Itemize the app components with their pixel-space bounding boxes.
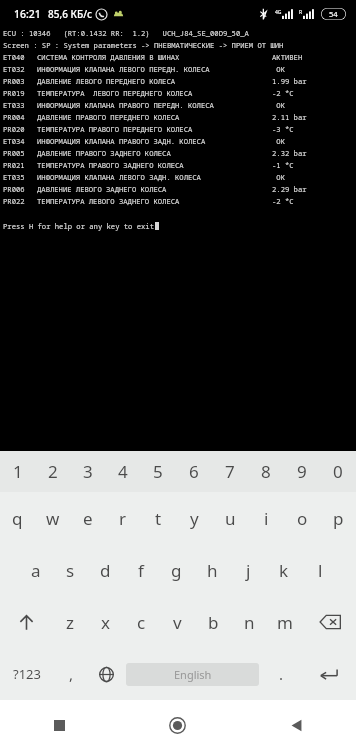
- button[interactable]: j: [230, 544, 266, 596]
- button[interactable]: v: [159, 596, 195, 648]
- button[interactable]: n: [231, 596, 267, 648]
- staticText: f: [138, 559, 144, 582]
- staticText: ,: [69, 664, 74, 684]
- button[interactable]: r: [105, 492, 140, 544]
- staticText: English: [174, 667, 212, 682]
- staticText: 1.99 bar: [272, 76, 307, 86]
- staticText: PR003: [3, 76, 25, 86]
- button[interactable]: ,: [54, 648, 89, 700]
- button[interactable]: a: [18, 544, 53, 596]
- staticText: ET033: [3, 100, 25, 110]
- staticText: ?123: [13, 665, 41, 683]
- staticText: y: [190, 507, 199, 530]
- button[interactable]: 6: [176, 451, 212, 492]
- button[interactable]: 0: [320, 451, 356, 492]
- button[interactable]: y: [176, 492, 212, 544]
- staticText: ТЕМПЕРАТУРА ПРАВОГО ПЕРЕДНЕГО КОЛЕСА: [37, 124, 193, 134]
- button[interactable]: Recent apps: [0, 700, 118, 750]
- button[interactable]: c: [123, 596, 159, 648]
- button[interactable]: 4: [105, 451, 140, 492]
- button[interactable]: m: [267, 596, 303, 648]
- staticText: OK: [272, 136, 285, 146]
- button[interactable]: l: [302, 544, 338, 596]
- staticText: ИНФОРМАЦИЯ КЛАПАНА ПРАВОГО ЗАДН. КОЛЕСА: [37, 136, 206, 146]
- button[interactable]: 9: [284, 451, 320, 492]
- staticText: ИНФОРМАЦИЯ КЛАПАНА ЛЕВОГО ПЕРЕДН. КОЛЕСА: [37, 64, 210, 74]
- button[interactable]: p: [320, 492, 356, 544]
- staticText: ДАВЛЕНИЕ ПРАВОГО ЗАДНЕГО КОЛЕСА: [37, 148, 171, 158]
- button[interactable]: t: [140, 492, 176, 544]
- staticText: r: [119, 507, 127, 530]
- button[interactable]: o: [284, 492, 320, 544]
- staticText: PR005: [3, 148, 25, 158]
- button[interactable]: f: [123, 544, 158, 596]
- staticText: ET040: [3, 52, 25, 62]
- staticText: q: [12, 507, 23, 530]
- button[interactable]: x: [87, 596, 123, 648]
- staticText: ET032: [3, 64, 25, 74]
- staticText: c: [137, 611, 146, 634]
- button[interactable]: 7: [212, 451, 248, 492]
- staticText: OK: [272, 100, 285, 110]
- staticText: ECU : 10346 (RT:0.1432 RR: 1.2) UCH_J84_…: [3, 28, 249, 38]
- staticText: 2: [48, 460, 58, 483]
- staticText: СИСТЕМА КОНТРОЛЯ ДАВЛЕНИЯ В ШИНАХ: [37, 52, 180, 62]
- staticText: v: [173, 611, 182, 634]
- button[interactable]: e: [70, 492, 105, 544]
- button[interactable]: Home: [118, 700, 237, 750]
- staticText: w: [46, 507, 60, 530]
- staticText: 0: [333, 460, 343, 483]
- staticText: 1: [13, 460, 23, 483]
- button[interactable]: 8: [248, 451, 284, 492]
- button[interactable]: 1: [0, 451, 35, 492]
- staticText: 2.11 bar: [272, 112, 307, 122]
- button[interactable]: u: [212, 492, 248, 544]
- button[interactable]: h: [194, 544, 230, 596]
- staticText: g: [171, 559, 182, 582]
- button[interactable]: z: [52, 596, 87, 648]
- button[interactable]: i: [248, 492, 284, 544]
- staticText: -1 *C: [272, 160, 294, 170]
- staticText: 54: [329, 9, 338, 19]
- staticText: ДАВЛЕНИЕ ПРАВОГО ПЕРЕДНЕГО КОЛЕСА: [37, 112, 180, 122]
- staticText: h: [207, 559, 218, 582]
- button[interactable]: k: [266, 544, 302, 596]
- button[interactable]: w: [35, 492, 70, 544]
- staticText: 8: [261, 460, 271, 483]
- button[interactable]: Back: [237, 700, 356, 750]
- button[interactable]: g: [158, 544, 194, 596]
- button[interactable]: English: [124, 648, 260, 700]
- button[interactable]: d: [88, 544, 123, 596]
- button[interactable]: Shift: [0, 596, 52, 648]
- staticText: OK: [272, 172, 285, 182]
- button[interactable]: Enter: [302, 648, 356, 700]
- button[interactable]: s: [53, 544, 88, 596]
- staticText: ДАВЛЕНИЕ ЛЕВОГО ПЕРЕДНЕГО КОЛЕСА: [37, 76, 176, 86]
- staticText: 2.29 bar: [272, 184, 307, 194]
- staticText: 4G: [275, 9, 282, 16]
- staticText: PR019: [3, 88, 25, 98]
- staticText: .: [279, 664, 284, 684]
- staticText: 3: [83, 460, 93, 483]
- button[interactable]: b: [195, 596, 231, 648]
- staticText: l: [318, 559, 323, 582]
- button[interactable]: .: [260, 648, 302, 700]
- button[interactable]: 5: [140, 451, 176, 492]
- button[interactable]: ?123: [0, 648, 54, 700]
- staticText: ДАВЛЕНИЕ ЛЕВОГО ЗАДНЕГО КОЛЕСА: [37, 184, 167, 194]
- staticText: 7: [225, 460, 235, 483]
- staticText: e: [83, 507, 93, 530]
- staticText: ИНФОРМАЦИЯ КЛАПАНА ЛЕВОГО ЗАДН. КОЛЕСА: [37, 172, 201, 182]
- staticText: m: [277, 611, 293, 634]
- staticText: ТЕМПЕРАТУРА ЛЕВОГО ЗАДНЕГО КОЛЕСА: [37, 196, 180, 206]
- button[interactable]: Change language: [89, 648, 124, 700]
- staticText: ET035: [3, 172, 25, 182]
- staticText: z: [66, 611, 74, 634]
- button[interactable]: q: [0, 492, 35, 544]
- staticText: x: [101, 611, 110, 634]
- button[interactable]: Backspace: [303, 596, 356, 648]
- staticText: d: [100, 559, 111, 582]
- button[interactable]: 2: [35, 451, 70, 492]
- button[interactable]: 3: [70, 451, 105, 492]
- staticText: 9: [297, 460, 307, 483]
